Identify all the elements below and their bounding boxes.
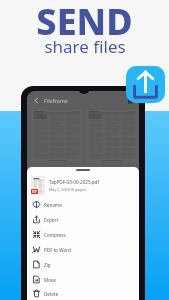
staticText: Compress [44,232,66,238]
staticText: Zip [44,262,51,268]
staticText: SEND [36,0,133,46]
button[interactable]: PDF [32,174,134,196]
button[interactable]: Upload [126,66,165,103]
staticText: PDF to Word [44,247,71,253]
button[interactable]: PDF to Word [32,242,134,257]
button[interactable]: Lock [126,96,135,105]
staticText: PDF [32,190,37,194]
button[interactable]: Rename [32,197,134,212]
staticText: Move [44,277,56,283]
staticText: TapPDF-03-06-2025.pdf [49,179,100,185]
staticText: Delete [44,291,58,297]
button[interactable]: Export [32,212,134,227]
staticText: Export [44,217,59,223]
staticText: FileName [44,97,68,104]
button[interactable]: Back [31,95,42,106]
button[interactable]: Zip [32,257,134,272]
staticText: May 3, 2025 (6 pages) [49,187,87,192]
button[interactable]: Compress [32,227,134,242]
button[interactable]: Move [32,272,134,287]
staticText: Rename [44,202,62,208]
staticText: share files [44,35,126,58]
button[interactable]: Delete [32,287,134,300]
